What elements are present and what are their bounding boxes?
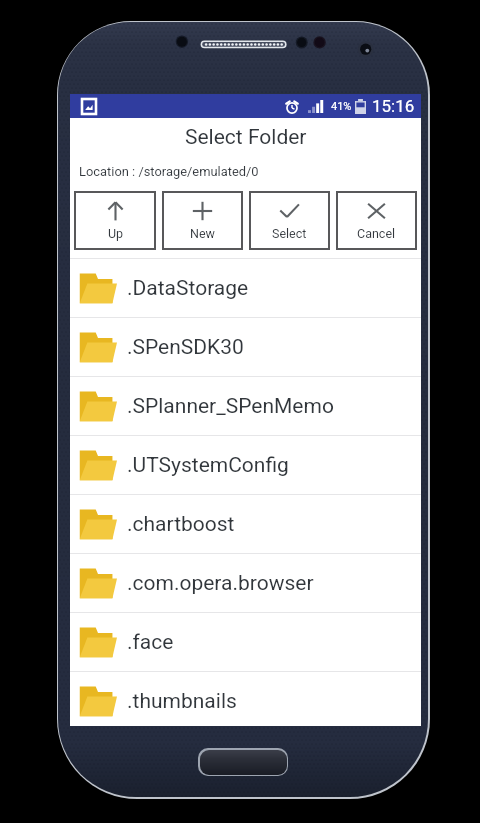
- staticText: 41%: [331, 100, 352, 113]
- staticText: .DataStorage: [127, 276, 249, 301]
- button[interactable]: .SPenSDK30: [70, 318, 421, 376]
- button[interactable]: .thumbnails: [70, 672, 421, 730]
- button[interactable]: .UTSystemConfig: [70, 436, 421, 494]
- staticText: .SPenSDK30: [127, 335, 244, 360]
- button[interactable]: New: [162, 191, 243, 250]
- staticText: .thumbnails: [127, 689, 237, 714]
- staticText: New: [190, 226, 215, 241]
- staticText: Cancel: [357, 226, 396, 241]
- staticText: Select Folder: [185, 125, 307, 150]
- staticText: .com.opera.browser: [127, 571, 314, 596]
- button[interactable]: Cancel: [336, 191, 417, 250]
- staticText: .SPlanner_SPenMemo: [127, 394, 334, 419]
- staticText: .chartboost: [127, 512, 235, 537]
- button[interactable]: .DataStorage: [70, 259, 421, 317]
- staticText: .face: [127, 630, 174, 655]
- button[interactable]: .com.opera.browser: [70, 554, 421, 612]
- staticText: 15:16: [372, 96, 415, 116]
- staticText: Select: [272, 226, 307, 241]
- button[interactable]: Up: [74, 191, 156, 250]
- button[interactable]: .SPlanner_SPenMemo: [70, 377, 421, 435]
- staticText: .UTSystemConfig: [127, 453, 289, 478]
- staticText: Up: [108, 226, 124, 241]
- staticText: Location : /storage/emulated/0: [79, 164, 259, 179]
- button[interactable]: .face: [70, 613, 421, 671]
- button[interactable]: Select: [249, 191, 330, 250]
- button[interactable]: .chartboost: [70, 495, 421, 553]
